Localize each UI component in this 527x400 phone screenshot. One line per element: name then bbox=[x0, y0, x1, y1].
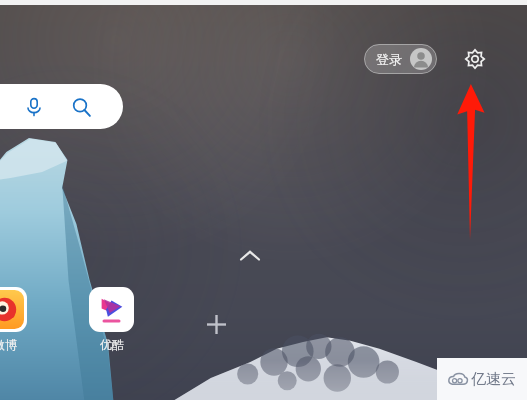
staticText: 亿速云 bbox=[471, 370, 516, 389]
button[interactable]: Search bbox=[65, 91, 97, 123]
button[interactable]: 登录 bbox=[364, 44, 437, 74]
staticText: 优酷 bbox=[100, 337, 124, 352]
staticText: 登录 bbox=[376, 51, 402, 67]
staticText: 微博 bbox=[0, 337, 17, 352]
button[interactable]: Open app drawer bbox=[238, 244, 262, 268]
button[interactable]: Add bbox=[202, 310, 230, 338]
button[interactable]: 微博 bbox=[0, 287, 27, 352]
button[interactable]: 优酷 bbox=[89, 287, 134, 352]
button[interactable]: Settings bbox=[461, 45, 489, 73]
button[interactable]: Voice search bbox=[0, 84, 123, 129]
button[interactable]: Voice search bbox=[18, 91, 50, 123]
